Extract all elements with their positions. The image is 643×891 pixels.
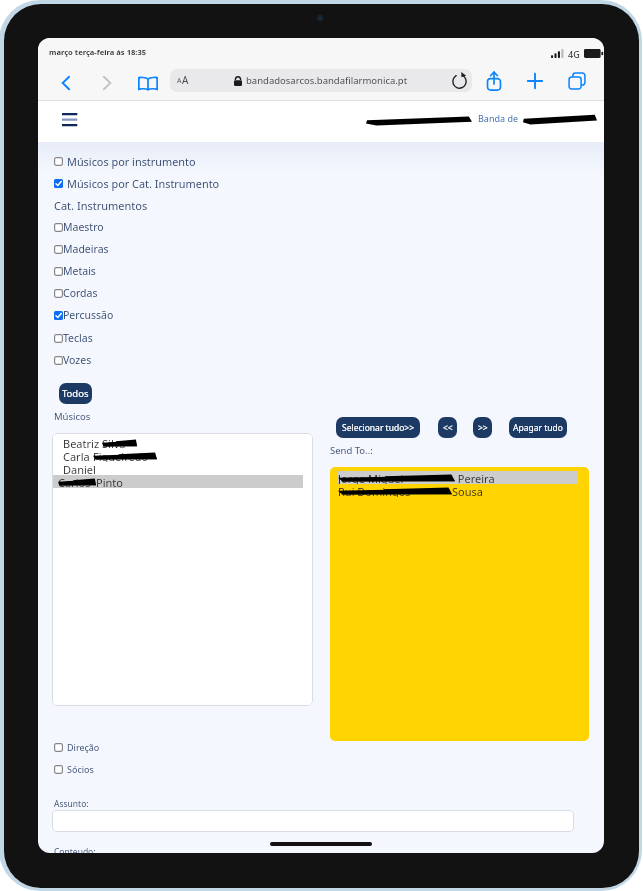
- button[interactable]: New tab: [523, 69, 547, 93]
- staticText: A: [177, 76, 182, 86]
- staticText: Pereira: [455, 471, 495, 484]
- button[interactable]: Back: [54, 71, 78, 95]
- staticText: Apagar tudo: [513, 422, 563, 434]
- staticText: março terça-feira às 18:35: [49, 47, 147, 57]
- staticText: Send To..:: [330, 444, 373, 457]
- staticText: Figueiredo M: [93, 449, 157, 462]
- button[interactable]: Share: [482, 69, 506, 93]
- button[interactable]: <<: [438, 417, 457, 438]
- staticText: Sócios: [67, 763, 94, 775]
- staticText: Carla: [63, 449, 93, 462]
- staticText: Beatriz: [63, 436, 102, 449]
- staticText: Todos: [62, 387, 89, 400]
- staticText: Músicos: [54, 410, 91, 423]
- button[interactable]: A: [170, 69, 472, 92]
- button[interactable]: Reload: [448, 69, 471, 92]
- button[interactable]: >>: [473, 417, 492, 438]
- staticText: A: [182, 73, 189, 87]
- button[interactable]: Apagar tudo: [509, 417, 567, 438]
- button[interactable]: Vozes: [54, 352, 92, 368]
- button[interactable]: Músicos por Cat. Instrumento: [54, 175, 220, 191]
- staticText: Silva: [102, 436, 126, 449]
- staticText: Percussão: [63, 308, 114, 322]
- button[interactable]: Percussão: [54, 307, 114, 323]
- staticText: Rui Domingos Cardoso: [338, 484, 452, 497]
- button[interactable]: [52, 810, 574, 832]
- button[interactable]: Maestro: [54, 219, 104, 235]
- staticText: 4G: [568, 48, 580, 60]
- button[interactable]: Direção: [54, 739, 100, 755]
- staticText: <<: [443, 422, 453, 434]
- button[interactable]: Músicos por instrumento: [54, 153, 196, 169]
- button[interactable]: Todos: [59, 383, 92, 404]
- staticText: >>: [478, 422, 488, 434]
- staticText: Vozes: [63, 353, 92, 367]
- staticText: Conteudo:: [54, 846, 96, 853]
- staticText: Daniel: [63, 462, 96, 475]
- staticText: Madeiras: [63, 242, 109, 256]
- staticText: Músicos por Cat. Instrumento: [67, 176, 220, 191]
- button[interactable]: Carlos: [52, 475, 303, 488]
- staticText: Cat. Instrumentos: [54, 198, 148, 213]
- button[interactable]: Bookmarks: [136, 71, 160, 95]
- staticText: Metais: [63, 264, 96, 278]
- staticText: Selecionar tudo>>: [342, 422, 415, 434]
- button[interactable]: Selecionar tudo>>: [336, 417, 420, 438]
- button[interactable]: Metais: [54, 263, 96, 279]
- button[interactable]: Teclas: [54, 330, 93, 346]
- button[interactable]: Beatriz: [52, 433, 313, 706]
- button[interactable]: Beatriz: [52, 436, 303, 449]
- button[interactable]: Madeiras: [54, 241, 109, 257]
- staticText: Carlos: [58, 475, 91, 488]
- button[interactable]: Cordas: [54, 285, 98, 301]
- staticText: Cordas: [63, 286, 98, 300]
- staticText: Sousa: [452, 484, 483, 497]
- staticText: Pinto: [96, 475, 123, 488]
- button[interactable]: Forward: [95, 71, 119, 95]
- button[interactable]: Carla: [52, 449, 303, 462]
- button[interactable]: Daniel: [52, 462, 303, 475]
- staticText: Músicos por instrumento: [67, 154, 196, 169]
- button[interactable]: Menu: [58, 108, 82, 132]
- staticText: Direção: [67, 741, 100, 753]
- button[interactable]: Jorge Miguel Rodrigues: [330, 467, 589, 741]
- staticText: Maestro: [63, 220, 104, 234]
- staticText: Teclas: [63, 331, 93, 345]
- staticText: Assunto:: [54, 798, 89, 810]
- staticText: Jorge Miguel Rodrigues: [338, 471, 455, 484]
- button[interactable]: Sócios: [54, 761, 94, 777]
- staticText: bandadosarcos.bandafilarmonica.pt: [246, 74, 408, 87]
- button[interactable]: Tabs: [565, 69, 589, 93]
- staticText: Banda de: [478, 112, 518, 124]
